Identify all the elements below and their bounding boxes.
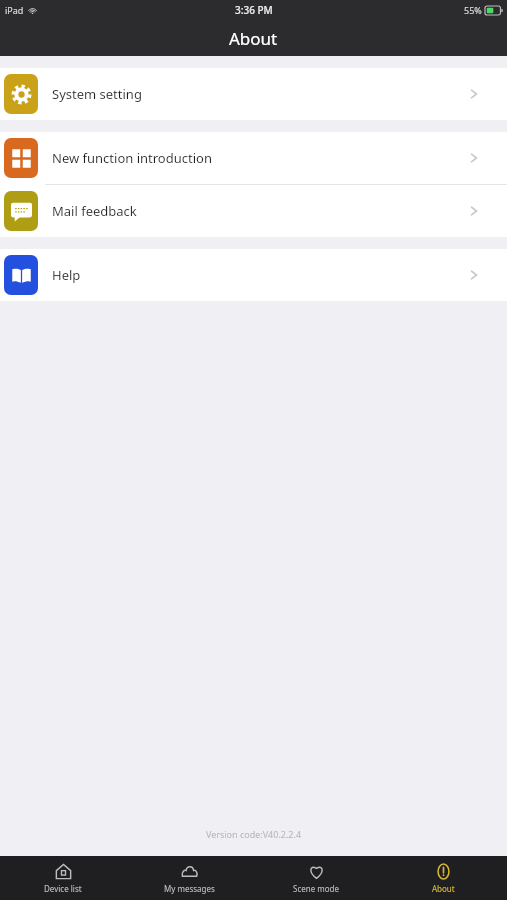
staticText: About xyxy=(229,27,278,50)
staticText: 55% xyxy=(464,4,482,16)
staticText: Help xyxy=(52,266,81,284)
button[interactable]: Scene mode xyxy=(253,856,380,900)
staticText: Mail feedback xyxy=(52,202,137,220)
button[interactable]: Mail feedback xyxy=(0,185,507,237)
staticText: My messages xyxy=(164,883,215,894)
staticText: Scene mode xyxy=(293,883,340,894)
staticText: Device list xyxy=(44,883,82,894)
staticText: iPad xyxy=(5,4,24,16)
button[interactable]: New function introduction xyxy=(0,132,507,184)
button[interactable]: Help xyxy=(0,249,507,301)
staticText: New function introduction xyxy=(52,149,212,167)
staticText: System setting xyxy=(52,85,142,103)
button[interactable]: About xyxy=(380,856,507,900)
staticText: About xyxy=(432,883,455,894)
button[interactable]: Device list xyxy=(0,856,126,900)
button[interactable]: My messages xyxy=(126,856,253,900)
button[interactable]: System setting xyxy=(0,68,507,120)
staticText: 3:36 PM xyxy=(235,3,273,17)
staticText: Version code:V40.2.2.4 xyxy=(0,828,507,840)
